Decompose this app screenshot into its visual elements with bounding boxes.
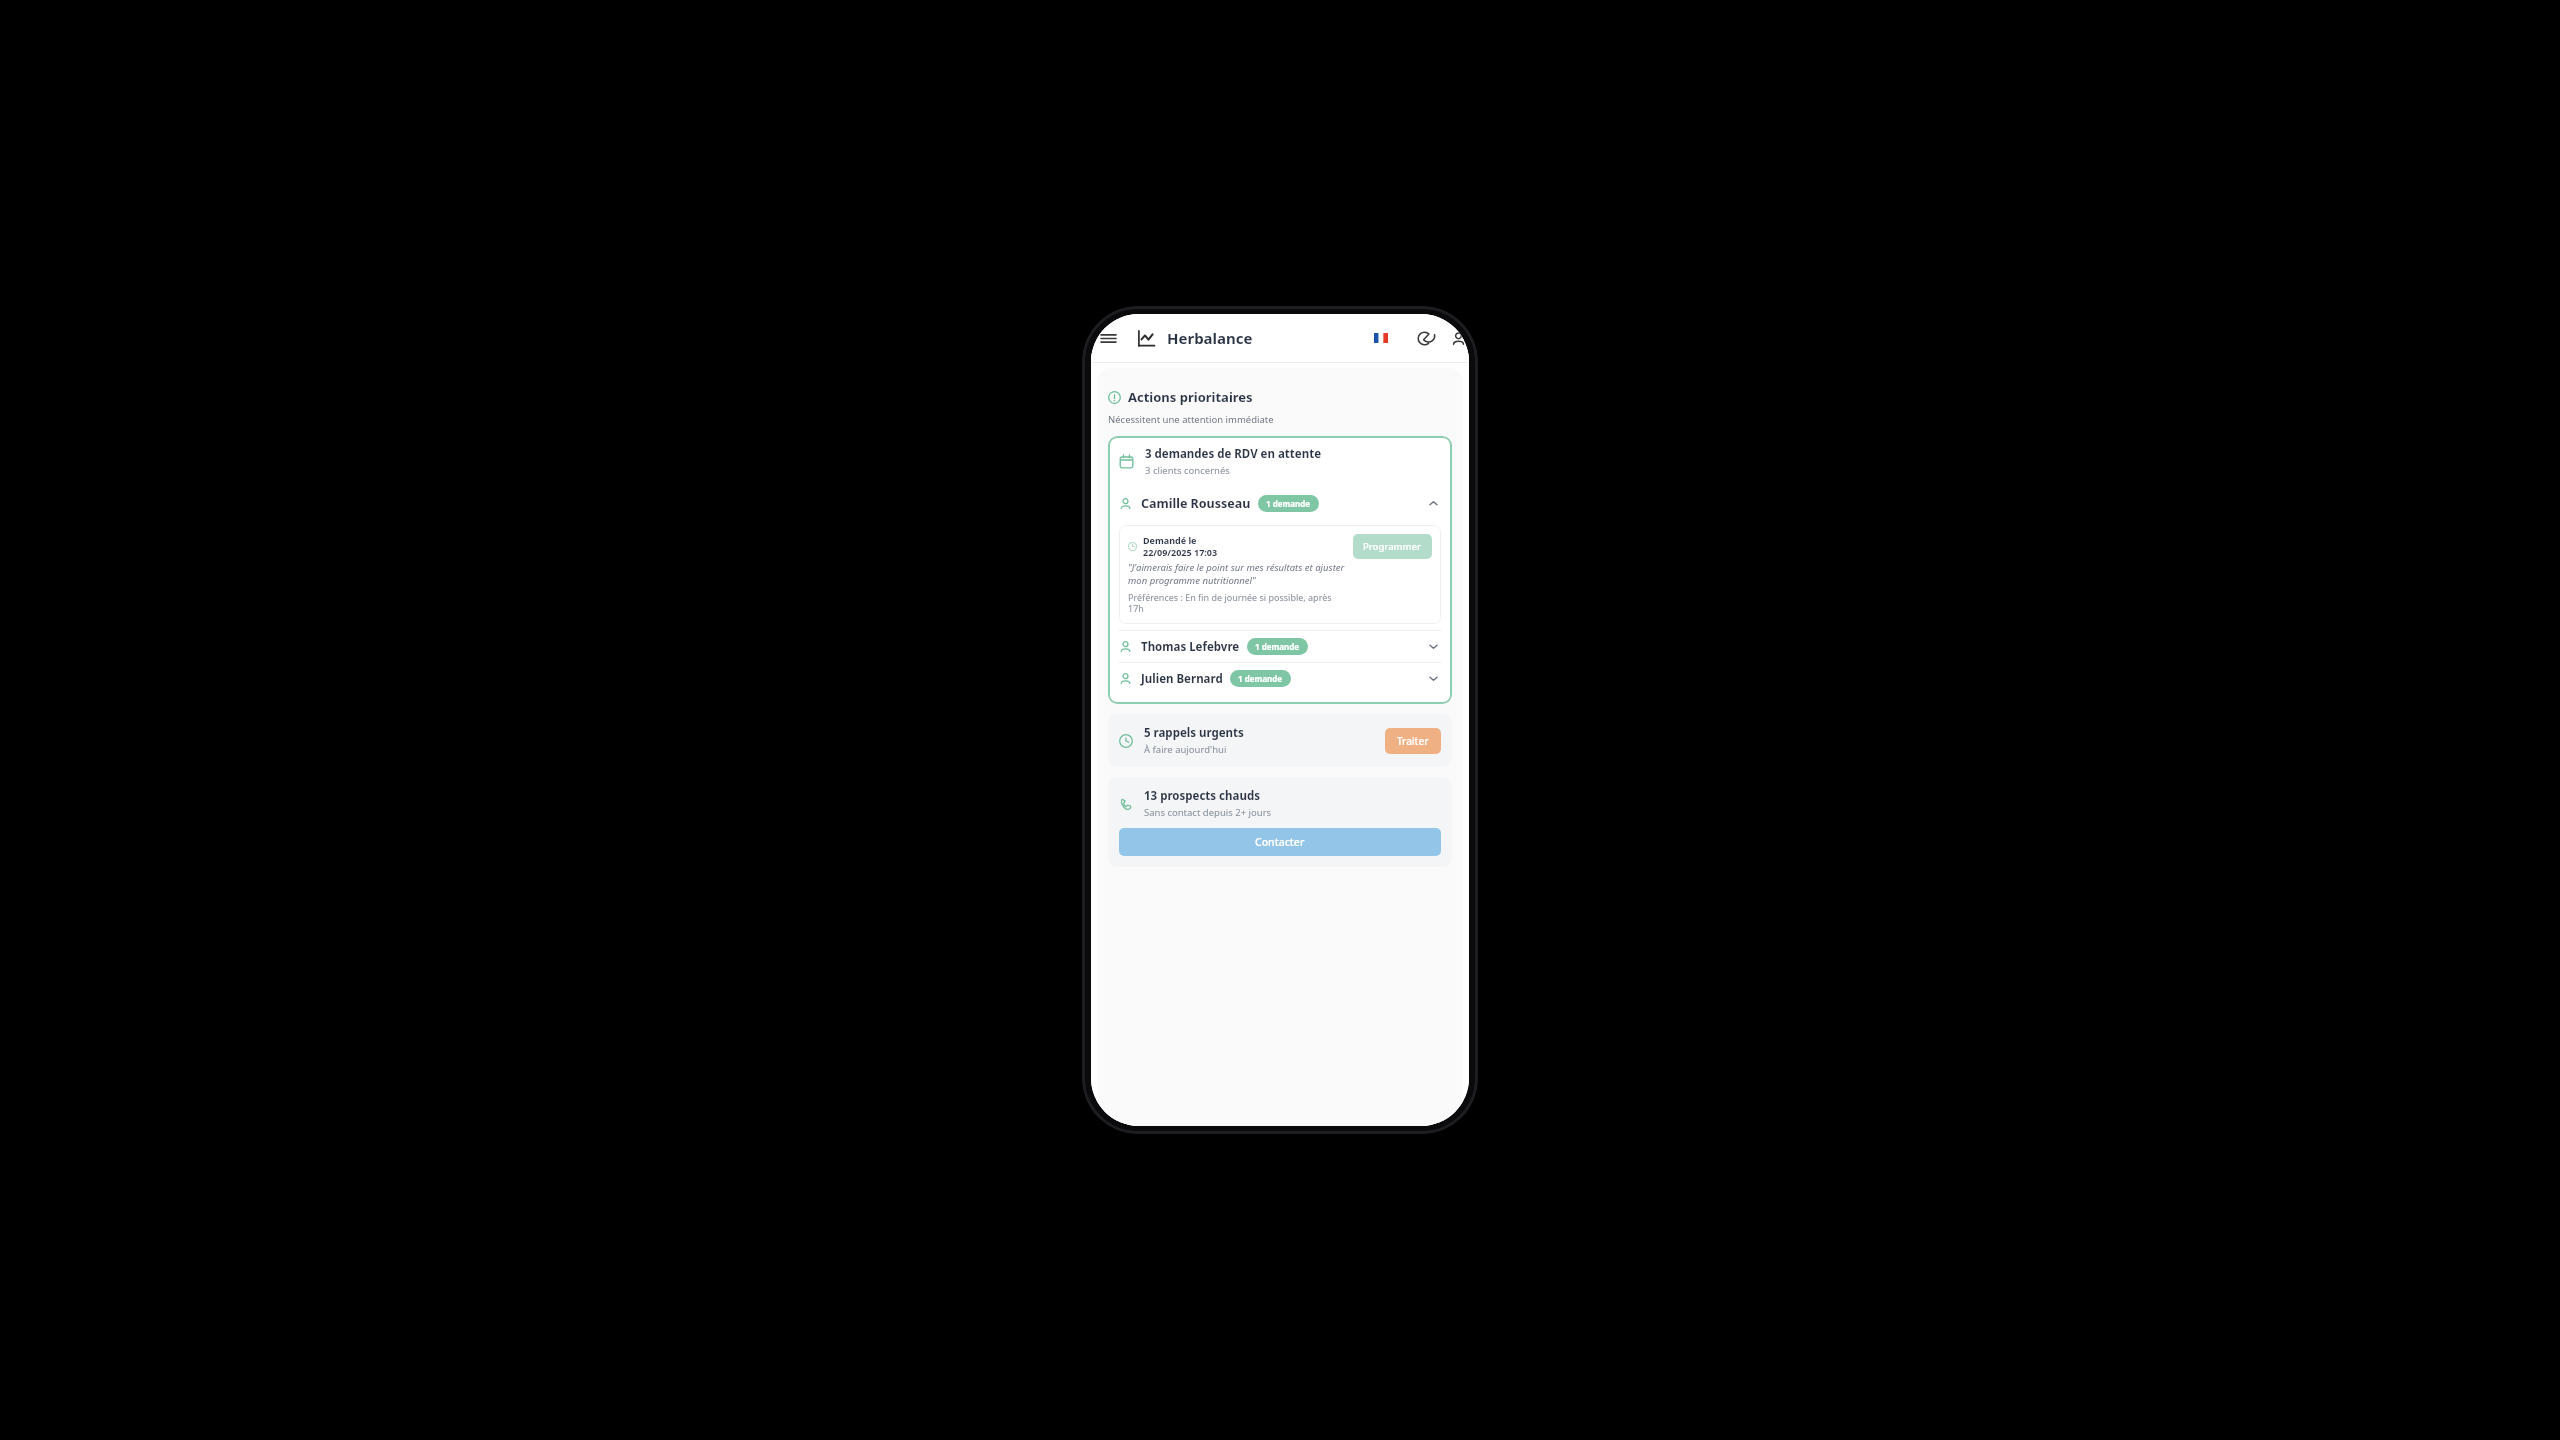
button[interactable]: Mode sombre	[1411, 325, 1437, 351]
staticText: Herbalance	[1167, 328, 1253, 348]
staticText: Sans contact depuis 2+ jours	[1144, 806, 1272, 819]
button[interactable]: Traiter	[1385, 728, 1441, 754]
staticText: Camille Rousseau	[1141, 495, 1251, 512]
staticText: 13 prospects chauds	[1144, 788, 1260, 804]
staticText: 22/09/2025 17:03	[1143, 546, 1218, 558]
staticText: "J'aimerais faire le point sur mes résul…	[1128, 561, 1347, 587]
staticText: Nécessitent une attention immédiate	[1108, 413, 1274, 426]
staticText: Demandé le	[1143, 534, 1197, 546]
staticText: 3 demandes de RDV en attente	[1145, 446, 1322, 462]
staticText: Actions prioritaires	[1128, 388, 1253, 406]
staticText: 5 rappels urgents	[1144, 725, 1244, 741]
staticText: Contacter	[1255, 835, 1305, 849]
button[interactable]: Menu	[1093, 323, 1123, 353]
staticText: Préférences : En fin de journée si possi…	[1128, 591, 1347, 615]
staticText: 1 demande	[1266, 498, 1311, 509]
button[interactable]: Langue	[1367, 325, 1395, 351]
button[interactable]: Julien Bernard	[1119, 663, 1441, 694]
staticText: 3 clients concernés	[1145, 464, 1230, 477]
staticText: 1 demande	[1255, 641, 1300, 652]
staticText: À faire aujourd'hui	[1144, 743, 1227, 756]
staticText: Julien Bernard	[1141, 671, 1223, 687]
staticText: Traiter	[1397, 734, 1429, 748]
staticText: Thomas Lefebvre	[1141, 639, 1240, 655]
staticText: 1 demande	[1238, 673, 1283, 684]
button[interactable]: Thomas Lefebvre	[1119, 631, 1441, 662]
button[interactable]: Camille Rousseau	[1119, 488, 1441, 519]
staticText: Programmer	[1363, 540, 1422, 553]
button[interactable]: Contacter	[1119, 828, 1441, 856]
button[interactable]: Profil	[1451, 325, 1469, 351]
button[interactable]: Programmer	[1353, 534, 1432, 559]
